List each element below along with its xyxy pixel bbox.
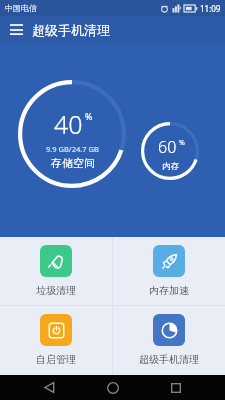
staticText: 40: [54, 107, 83, 141]
staticText: 超级手机清理: [139, 353, 199, 366]
staticText: %: [85, 110, 93, 122]
button[interactable]: 垃圾清理: [0, 237, 112, 305]
staticText: 内存: [162, 161, 179, 172]
staticText: 11:09: [200, 3, 221, 14]
button[interactable]: 内存加速: [113, 237, 225, 305]
staticText: %: [179, 138, 185, 148]
button[interactable]: 超级手机清理: [113, 306, 225, 375]
staticText: 存储空间: [51, 156, 95, 170]
button[interactable]: Home: [98, 375, 128, 400]
staticText: 超级手机清理: [32, 22, 110, 38]
button[interactable]: Back: [34, 375, 64, 400]
staticText: 自启管理: [36, 353, 76, 366]
staticText: 垃圾清理: [36, 284, 76, 297]
button[interactable]: Recents: [161, 375, 191, 400]
button[interactable]: Menu: [6, 20, 26, 40]
staticText: 中国电信: [5, 3, 37, 13]
staticText: 内存加速: [149, 284, 189, 297]
staticText: 9.9 GB/24.7 GB: [46, 144, 99, 154]
button[interactable]: 自启管理: [0, 306, 112, 375]
staticText: 60: [158, 136, 177, 158]
